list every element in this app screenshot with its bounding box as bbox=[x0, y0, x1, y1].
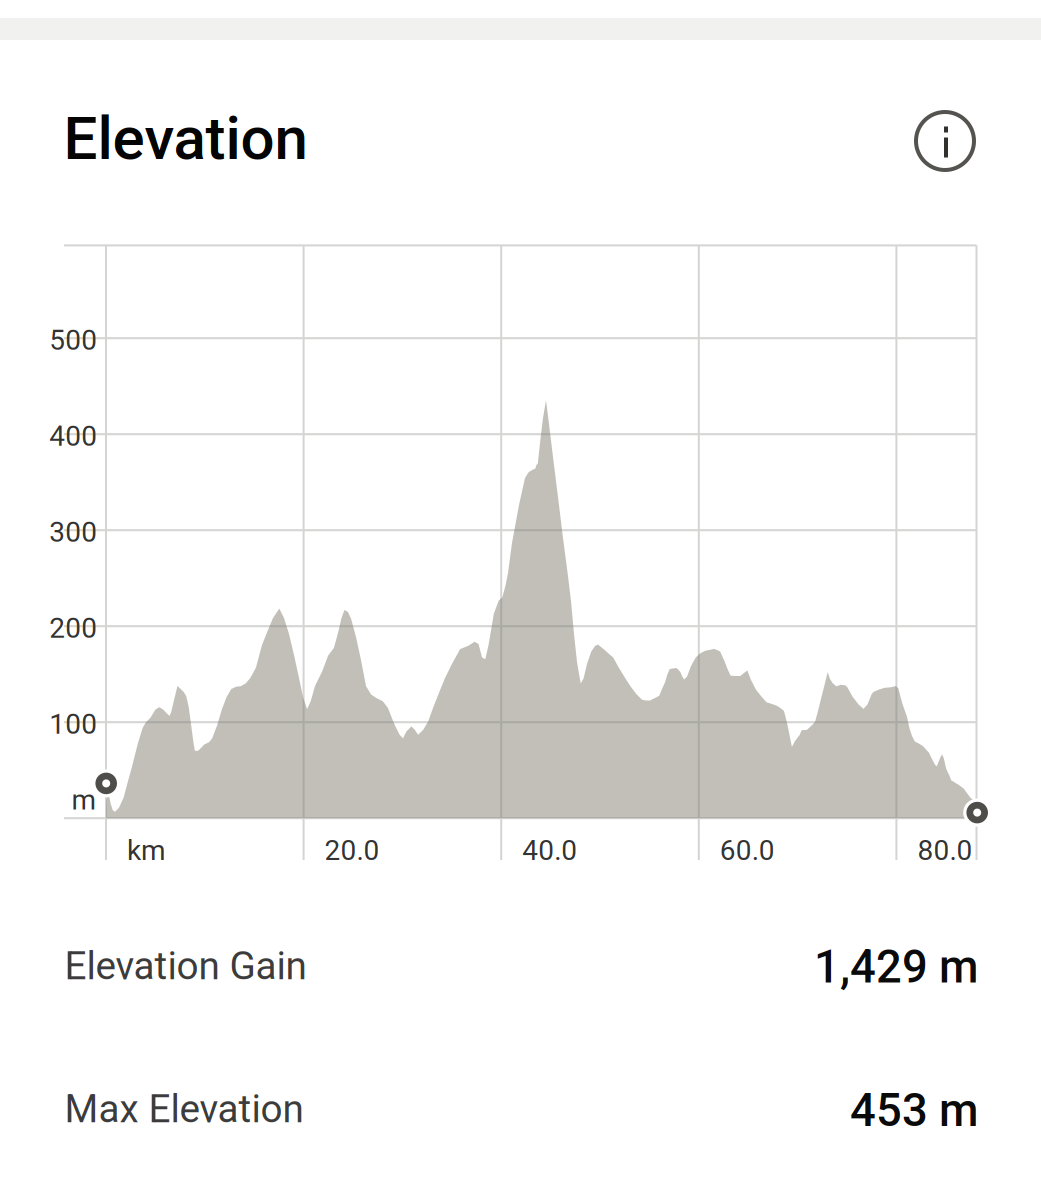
staticText: 453 m bbox=[850, 1084, 978, 1137]
staticText: 40.0 bbox=[522, 834, 577, 867]
staticText: 500 bbox=[49, 324, 97, 357]
staticText: km bbox=[127, 834, 166, 867]
staticText: 60.0 bbox=[720, 834, 775, 867]
staticText: Elevation bbox=[63, 103, 307, 174]
staticText: Elevation Gain bbox=[64, 943, 306, 989]
staticText: 300 bbox=[49, 516, 97, 549]
staticText: 200 bbox=[49, 612, 97, 645]
button[interactable]: About elevation bbox=[902, 98, 988, 184]
staticText: 20.0 bbox=[325, 834, 380, 867]
staticText: m bbox=[72, 784, 97, 816]
staticText: 80.0 bbox=[917, 834, 972, 867]
staticText: Max Elevation bbox=[64, 1086, 303, 1132]
staticText: 400 bbox=[49, 420, 97, 453]
staticText: 1,429 m bbox=[814, 940, 978, 993]
staticText: 100 bbox=[49, 708, 97, 741]
